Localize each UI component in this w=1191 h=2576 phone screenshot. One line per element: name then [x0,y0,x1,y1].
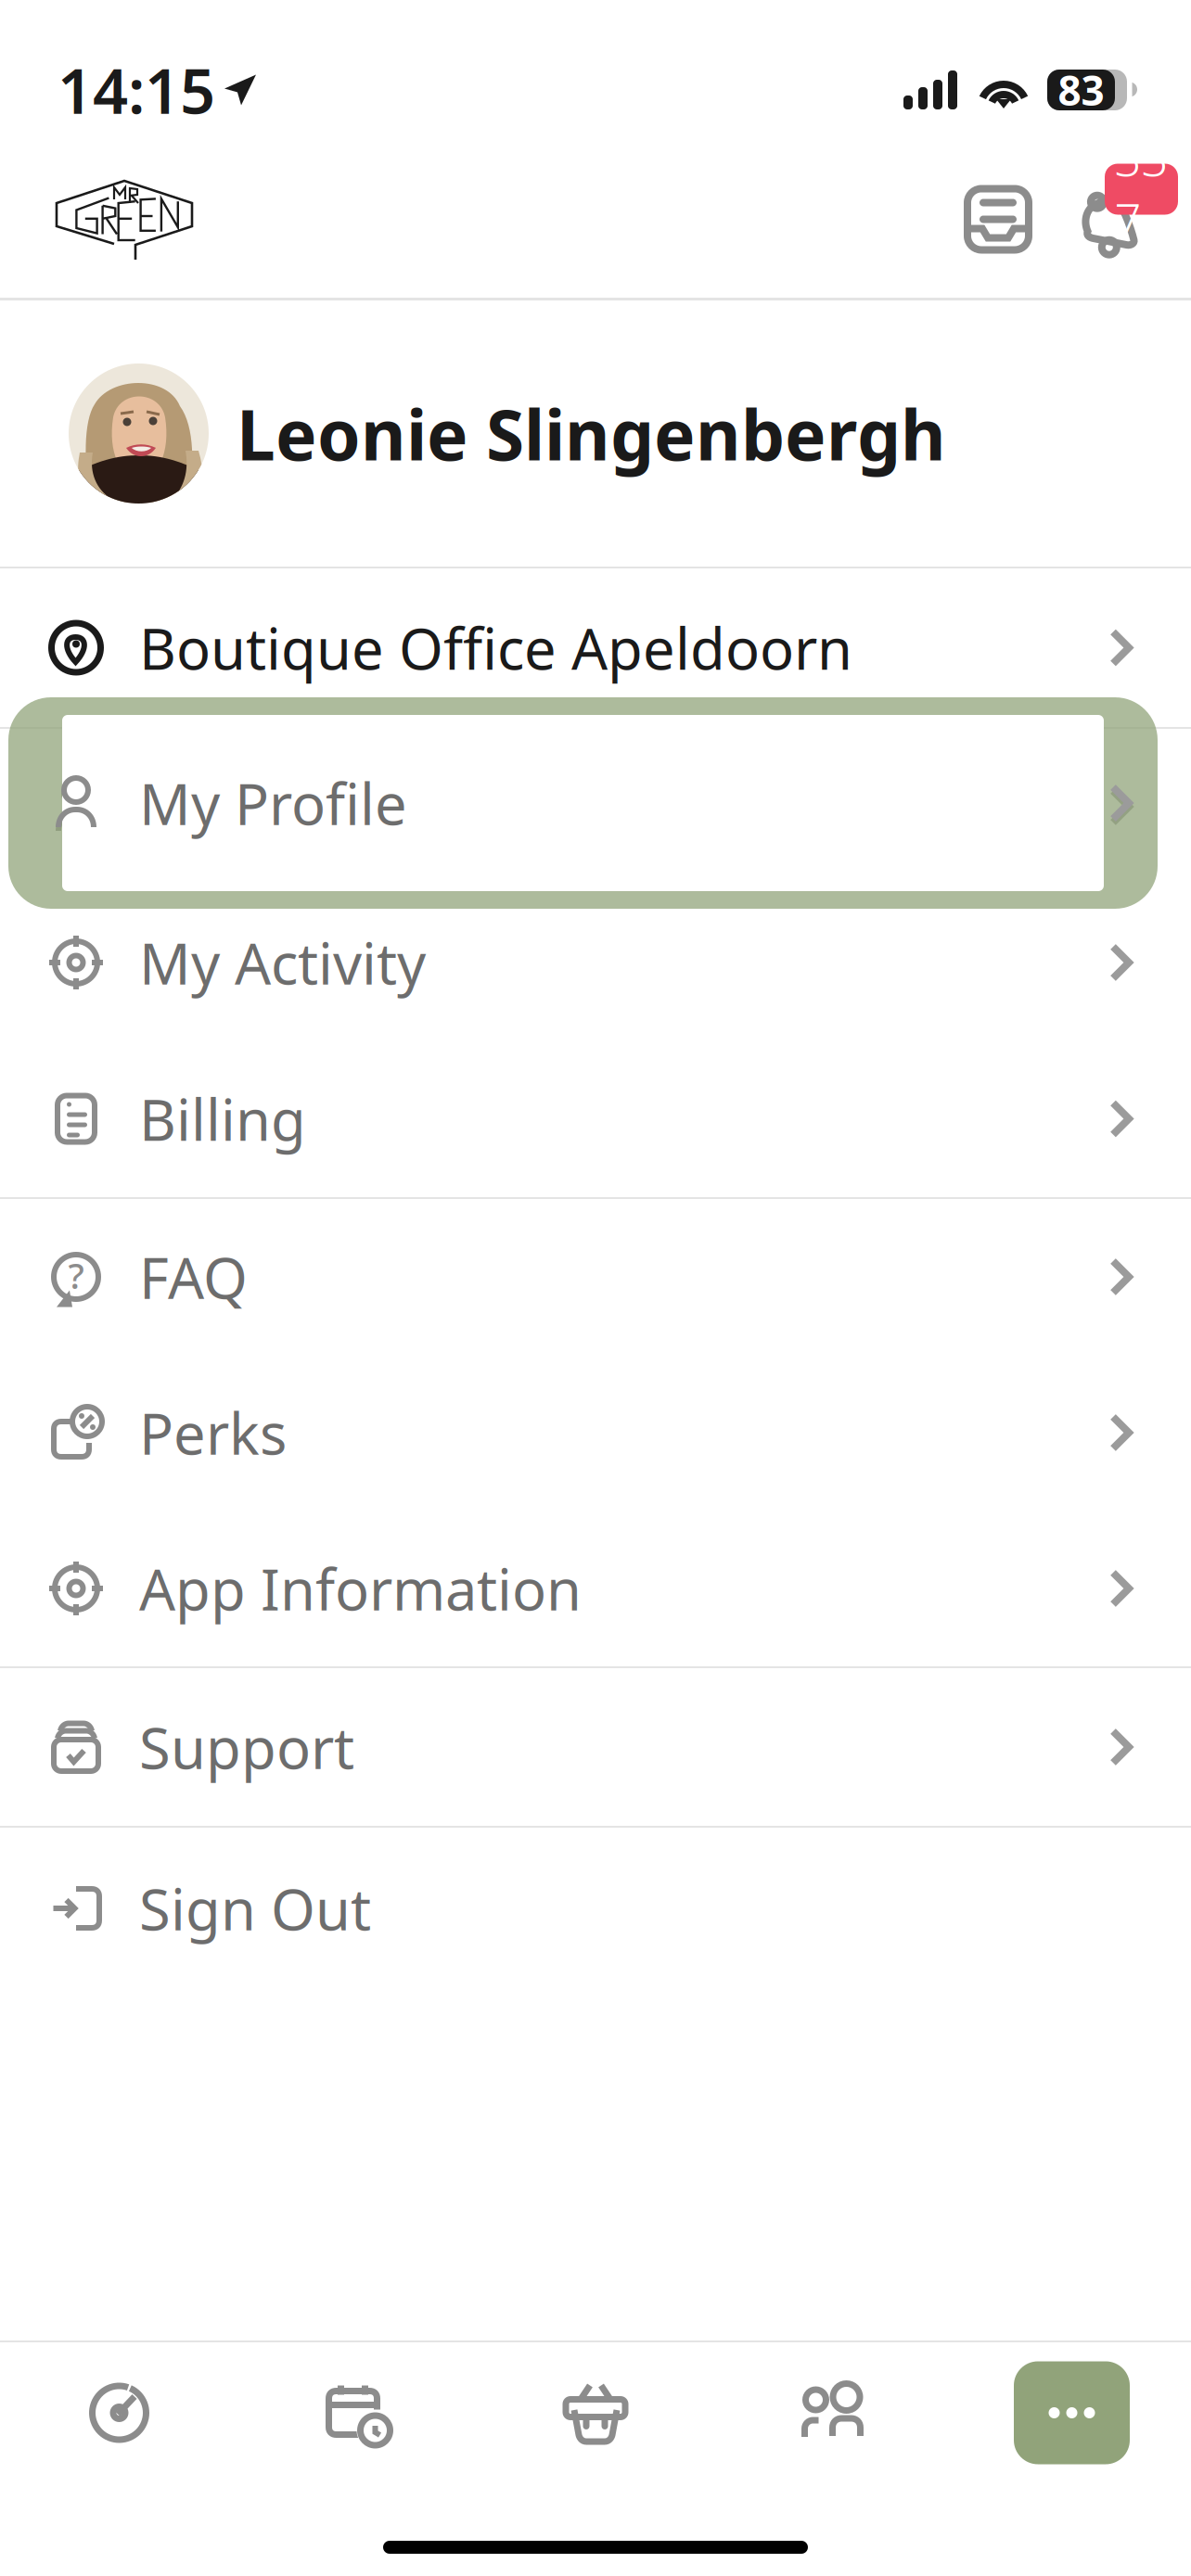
button[interactable]: My Activity [0,885,1191,1040]
button[interactable]: Notifications, 337 unread [1078,173,1191,266]
staticText: Leonie Slingenbergh [237,388,946,479]
staticText: My Profile [139,765,407,841]
button[interactable]: Orders [477,2353,714,2473]
staticText: 83 [1058,63,1104,117]
button[interactable]: Support [0,1668,1191,1826]
staticText: My Profile [139,769,407,844]
button[interactable]: Community [714,2353,953,2473]
button[interactable]: Schedule [238,2353,477,2473]
button[interactable]: Leonie Slingenbergh [0,300,1191,567]
button[interactable]: ? [0,1199,1191,1355]
staticText: 337 [1114,127,1168,252]
button[interactable]: Sign Out [0,1828,1191,1989]
staticText: App Information [139,1551,582,1626]
staticText: ? [68,1251,84,1299]
staticText: Perks [139,1395,287,1470]
staticText: Sign Out [139,1871,371,1946]
button[interactable]: My Profile [0,729,1191,885]
button[interactable]: Mr Green home [0,176,195,262]
staticText: My Activity [139,925,426,1000]
button[interactable]: Boutique Office Apeldoorn [0,568,1191,727]
button[interactable]: Billing [0,1040,1191,1197]
button[interactable]: More [953,2353,1191,2473]
staticText: Boutique Office Apeldoorn [139,610,852,685]
staticText: Support [139,1709,354,1785]
staticText: FAQ [139,1239,248,1315]
button[interactable]: App Information [0,1511,1191,1666]
button[interactable]: Inbox [947,168,1078,270]
button[interactable]: Dashboard [0,2353,238,2473]
staticText: Billing [139,1081,306,1157]
staticText: 14:15 [58,49,215,131]
button[interactable]: Perks [0,1355,1191,1511]
